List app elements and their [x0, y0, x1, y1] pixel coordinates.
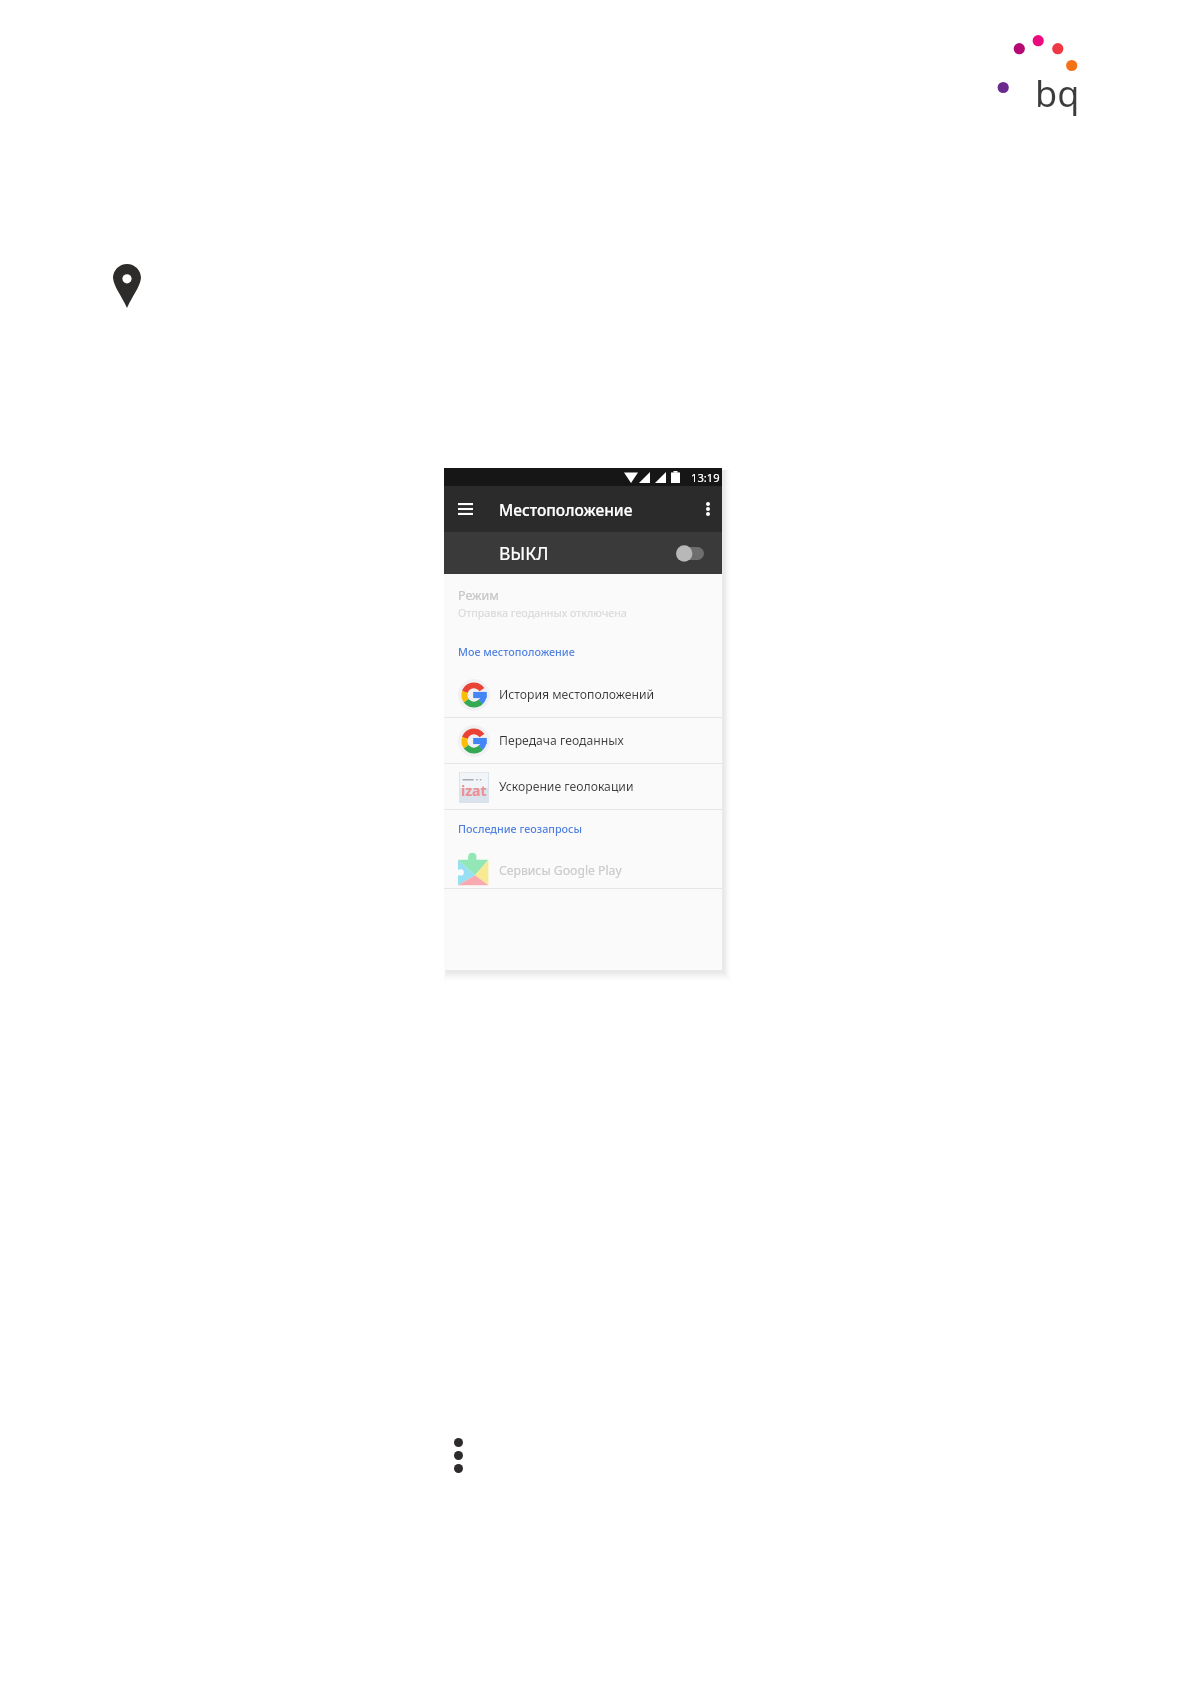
staticText: 13:19 [691, 470, 720, 485]
staticText: Передача геоданных [499, 732, 624, 749]
staticText: Сервисы Google Play [499, 862, 622, 879]
button[interactable]: История местоположений [444, 672, 722, 717]
button[interactable]: Режим [444, 574, 722, 631]
staticText: ВЫКЛ [499, 541, 549, 565]
button[interactable]: Сервисы Google Play [444, 846, 722, 888]
staticText: Отправка геоданных отключена [458, 605, 627, 620]
staticText: История местоположений [499, 686, 655, 703]
staticText: Режим [458, 587, 499, 604]
staticText: Ускорение геолокации [499, 778, 634, 795]
button[interactable]: Передача геоданных [444, 718, 722, 763]
staticText: izat [461, 781, 487, 800]
staticText: Последние геозапросы [458, 821, 583, 836]
button[interactable]: More options [691, 486, 722, 532]
button[interactable]: Menu [451, 486, 480, 532]
staticText: Мое местоположение [458, 644, 575, 659]
button[interactable]: ВЫКЛ [444, 532, 722, 574]
button[interactable]: izat [444, 764, 722, 809]
staticText: bq [1035, 69, 1080, 118]
staticText: Местоположение [499, 499, 633, 520]
